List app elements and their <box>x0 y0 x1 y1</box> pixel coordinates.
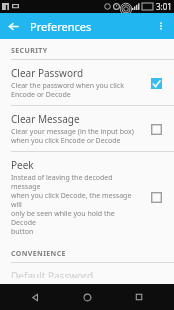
button[interactable]: Clear Message <box>0 106 174 151</box>
staticText: SECURITY <box>11 46 48 56</box>
staticText: Preferences <box>30 19 92 34</box>
button[interactable]: Navigate up <box>0 13 26 39</box>
button[interactable]: Clear Message, off <box>146 119 166 139</box>
staticText: Peek <box>11 158 34 172</box>
button[interactable]: Back <box>18 284 52 310</box>
staticText: Clear Message <box>11 112 80 126</box>
staticText: Default Password <box>11 269 94 278</box>
button[interactable]: Clear Password, on <box>146 73 166 93</box>
button[interactable]: Peek, off <box>146 187 166 207</box>
staticText: Clear your message (in the input box) wh… <box>11 127 134 145</box>
button[interactable]: Clear Password <box>0 60 174 105</box>
button[interactable]: Default Password <box>0 263 174 284</box>
button[interactable]: More options <box>148 13 174 39</box>
staticText: CONVENIENCE <box>11 249 66 259</box>
staticText: Instead of leaving the decoded message w… <box>11 173 141 236</box>
button[interactable]: Recent apps <box>122 284 156 310</box>
staticText: 3:01 <box>156 1 172 12</box>
button[interactable]: Home <box>70 284 104 310</box>
button[interactable]: Peek <box>0 152 174 242</box>
staticText: Clear the password when you click Encode… <box>11 81 124 99</box>
staticText: Clear Password <box>11 66 84 80</box>
